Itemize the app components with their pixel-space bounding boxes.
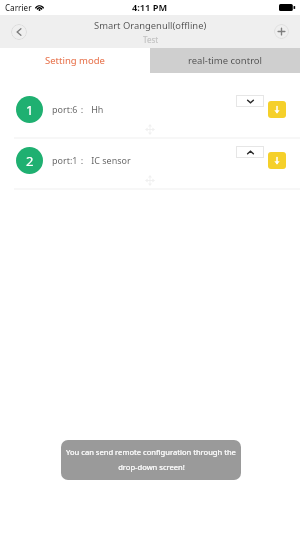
staticText: 2	[26, 152, 34, 170]
staticText: Smart Orangenull(offline)	[94, 19, 207, 32]
staticText: 4:11 PM	[132, 1, 168, 14]
staticText: Setting mode	[45, 54, 105, 67]
button[interactable]: 1	[0, 88, 300, 139]
button[interactable]: 2	[0, 139, 300, 190]
button[interactable]: Setting mode	[0, 48, 150, 73]
staticText: drop-down screen!	[118, 462, 185, 472]
staticText: Test	[143, 34, 159, 45]
staticText: port:6： Hh	[52, 103, 104, 115]
staticText: You can send remote configuration throug…	[66, 447, 236, 457]
button[interactable]: Back	[11, 24, 27, 40]
staticText: port:1： IC sensor	[52, 154, 131, 166]
button[interactable]: Download	[268, 152, 286, 169]
staticText: 1	[26, 101, 34, 119]
button[interactable]: Download	[268, 101, 286, 118]
button[interactable]: Collapse	[236, 146, 264, 158]
staticText: real-time control	[188, 54, 263, 67]
button[interactable]: real-time control	[150, 48, 300, 73]
staticText: Carrier	[5, 2, 32, 13]
button[interactable]: Add	[274, 24, 289, 39]
button[interactable]: Expand	[236, 95, 264, 107]
